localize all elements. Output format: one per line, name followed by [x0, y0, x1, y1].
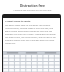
- staticText: A quiet place to write: [5, 19, 31, 22]
- staticText: The editor fades away so the words can b…: [5, 24, 58, 45]
- button[interactable]: Keyboard: [3, 51, 60, 72]
- staticText: A writing app that gets out of your way.: [13, 9, 52, 12]
- staticText: Distraction free: [20, 4, 45, 8]
